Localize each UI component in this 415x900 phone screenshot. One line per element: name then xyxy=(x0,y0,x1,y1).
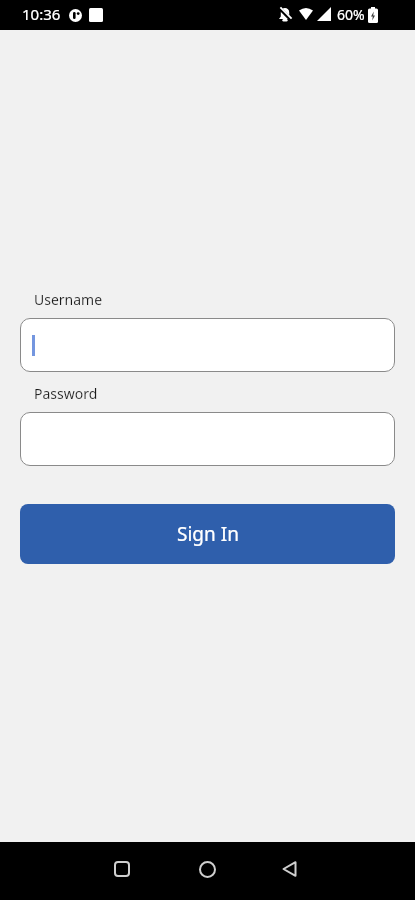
staticText: Username xyxy=(34,290,103,309)
staticText: Sign In xyxy=(177,521,239,547)
button[interactable] xyxy=(282,861,298,877)
staticText: Password xyxy=(34,384,98,403)
button[interactable]: Sign In xyxy=(20,504,395,564)
staticText: 10:36 xyxy=(22,4,61,24)
button[interactable] xyxy=(114,861,130,877)
button[interactable] xyxy=(20,318,395,372)
staticText: 60% xyxy=(337,5,365,24)
button[interactable] xyxy=(199,861,216,878)
button[interactable] xyxy=(20,412,395,466)
